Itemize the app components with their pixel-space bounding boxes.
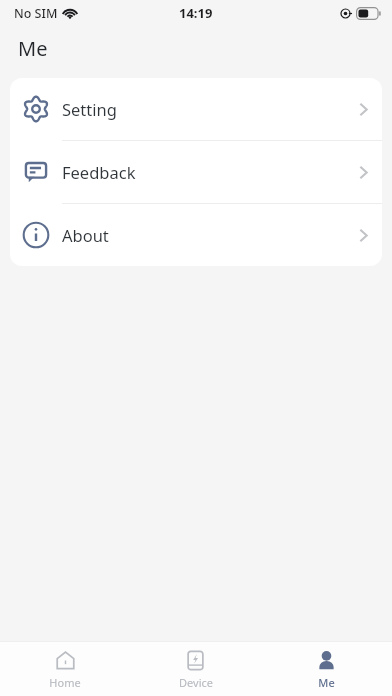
staticText: About [62, 224, 109, 246]
staticText: Me [318, 675, 335, 690]
staticText: No SIM [14, 5, 58, 22]
staticText: Feedback [62, 161, 136, 183]
button[interactable]: Setting [10, 78, 382, 140]
button[interactable]: Me [261, 649, 392, 690]
staticText: Device [179, 675, 213, 690]
button[interactable]: About [10, 204, 382, 266]
staticText: Me [18, 35, 48, 62]
button[interactable]: Home [0, 649, 130, 690]
staticText: 14:19 [179, 4, 213, 22]
staticText: Setting [62, 98, 117, 120]
button[interactable]: Device [130, 649, 261, 690]
staticText: Home [49, 675, 81, 690]
button[interactable]: Feedback [10, 141, 382, 203]
